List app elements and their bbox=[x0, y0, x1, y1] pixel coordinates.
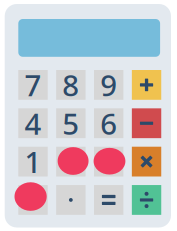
button[interactable]: Two bbox=[56, 147, 85, 176]
button[interactable]: 9 bbox=[94, 70, 123, 100]
staticText: 5 bbox=[62, 104, 79, 143]
staticText: 8 bbox=[62, 65, 79, 104]
button[interactable]: Subtract bbox=[132, 108, 161, 138]
button[interactable]: Zero bbox=[18, 185, 48, 215]
button[interactable]: 6 bbox=[94, 108, 123, 138]
button[interactable]: Add bbox=[132, 70, 161, 100]
button[interactable]: Multiply bbox=[132, 147, 161, 176]
button[interactable]: 4 bbox=[18, 108, 48, 138]
button[interactable]: Equals bbox=[94, 185, 123, 215]
staticText: 6 bbox=[100, 104, 117, 143]
button[interactable]: 1 bbox=[18, 147, 48, 176]
button[interactable]: Three bbox=[94, 147, 123, 176]
staticText: 1 bbox=[24, 142, 41, 181]
button[interactable]: 5 bbox=[56, 108, 85, 138]
button[interactable]: Decimal point bbox=[56, 185, 85, 215]
button[interactable]: 7 bbox=[18, 70, 48, 100]
staticText: 9 bbox=[100, 65, 117, 104]
staticText: 4 bbox=[24, 104, 41, 143]
button[interactable]: 8 bbox=[56, 70, 85, 100]
button[interactable]: Divide bbox=[132, 185, 161, 215]
staticText: 7 bbox=[24, 65, 41, 104]
